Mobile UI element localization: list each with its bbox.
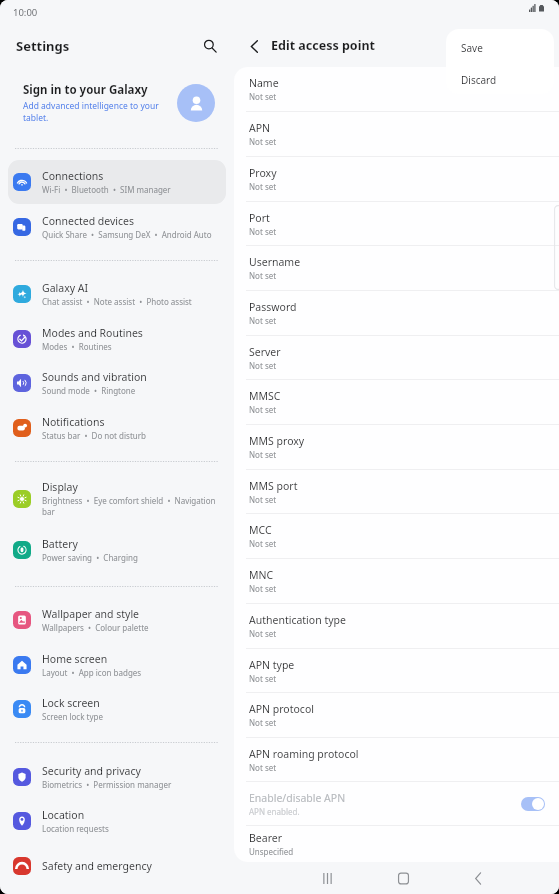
button[interactable]: APN roaming protocol [234, 738, 559, 782]
button[interactable]: Back [461, 863, 495, 893]
staticText: Authentication type [249, 613, 346, 627]
button[interactable]: MCC [234, 514, 559, 559]
staticText: Edit access point [271, 37, 375, 54]
staticText: Not set [249, 762, 277, 773]
staticText: Sounds and vibration [42, 370, 147, 384]
button[interactable]: Wallpaper and style [8, 598, 226, 642]
button[interactable]: Password [234, 291, 559, 336]
staticText: 10:00 [13, 6, 38, 19]
button[interactable]: Port [234, 202, 559, 246]
staticText: Not set [249, 226, 277, 237]
staticText: Discard [461, 73, 497, 87]
staticText: Not set [249, 538, 277, 549]
button[interactable]: Save [446, 29, 554, 66]
staticText: Bearer [249, 831, 283, 845]
button[interactable]: Name [234, 67, 559, 112]
button[interactable]: MNC [234, 559, 559, 604]
staticText: MMSC [249, 389, 281, 403]
button[interactable]: Notifications [8, 405, 226, 450]
button[interactable]: Username [234, 246, 559, 291]
button[interactable]: Security and privacy [8, 754, 226, 799]
button[interactable]: Enable/disable APN [234, 782, 559, 826]
staticText: APN roaming protocol [249, 747, 359, 761]
staticText: Modes • Routines [42, 341, 112, 352]
button[interactable]: Home [386, 863, 420, 893]
button[interactable]: Authentication type [234, 604, 559, 649]
button[interactable]: Connections [8, 160, 226, 204]
staticText: Not set [249, 673, 277, 684]
staticText: APN enabled. [249, 806, 300, 817]
staticText: Location requests [42, 823, 109, 834]
button[interactable]: Back [243, 35, 265, 57]
staticText: MMS port [249, 479, 298, 493]
button[interactable]: MMSC [234, 380, 559, 425]
staticText: Status bar • Do not disturb [42, 430, 146, 441]
staticText: Not set [249, 360, 277, 371]
staticText: Location [42, 808, 85, 822]
button[interactable]: Recent apps [310, 863, 344, 893]
staticText: APN protocol [249, 702, 314, 716]
staticText: Server [249, 345, 281, 359]
staticText: Password [249, 300, 297, 314]
button[interactable]: Display [8, 473, 226, 524]
staticText: Not set [249, 628, 277, 639]
staticText: Not set [249, 136, 277, 147]
staticText: Sound mode • Ringtone [42, 385, 136, 396]
button[interactable]: MMS port [234, 470, 559, 514]
staticText: Display [42, 480, 78, 494]
staticText: Chat assist • Note assist • Photo assist [42, 296, 192, 307]
staticText: Quick Share • Samsung DeX • Android Auto [42, 229, 212, 240]
button[interactable]: MMS proxy [234, 425, 559, 470]
staticText: Lock screen [42, 696, 100, 710]
staticText: Name [249, 76, 279, 90]
staticText: Security and privacy [42, 764, 141, 778]
button[interactable]: APN type [234, 649, 559, 693]
staticText: Not set [249, 449, 277, 460]
button[interactable]: Battery [8, 524, 226, 575]
button[interactable]: Galaxy AI [8, 272, 226, 316]
staticText: Add advanced intelligence to your tablet… [23, 100, 167, 124]
staticText: Username [249, 255, 301, 269]
staticText: Proxy [249, 166, 277, 180]
staticText: Enable/disable APN [249, 791, 346, 805]
staticText: Settings [16, 37, 70, 55]
staticText: Wi-Fi • Bluetooth • SIM manager [42, 184, 171, 195]
button[interactable]: APN [234, 112, 559, 157]
button[interactable]: Location [8, 799, 226, 843]
button[interactable]: Sign in to your Galaxy [23, 68, 215, 137]
button[interactable]: Proxy [234, 157, 559, 202]
button[interactable]: Connected devices [8, 204, 226, 249]
staticText: Home screen [42, 652, 108, 666]
button[interactable]: Search [197, 33, 223, 59]
staticText: Not set [249, 270, 277, 281]
staticText: Not set [249, 181, 277, 192]
staticText: Screen lock type [42, 711, 103, 722]
staticText: Power saving • Charging [42, 552, 138, 563]
staticText: Save [461, 41, 483, 55]
button[interactable]: Server [234, 336, 559, 380]
staticText: Connected devices [42, 214, 135, 228]
staticText: Wallpaper and style [42, 607, 140, 621]
button[interactable]: APN protocol [234, 693, 559, 738]
staticText: Port [249, 211, 270, 225]
button[interactable]: Discard [446, 66, 554, 94]
staticText: Notifications [42, 415, 105, 429]
button[interactable]: Sounds and vibration [8, 361, 226, 405]
button[interactable]: Lock screen [8, 687, 226, 731]
staticText: Biometrics • Permission manager [42, 779, 172, 790]
staticText: Safety and emergency [42, 859, 152, 873]
staticText: Not set [249, 717, 277, 728]
staticText: Not set [249, 494, 277, 505]
button[interactable]: Modes and Routines [8, 316, 226, 361]
staticText: Not set [249, 583, 277, 594]
staticText: Galaxy AI [42, 281, 89, 295]
staticText: MMS proxy [249, 434, 305, 448]
staticText: Unspecified [249, 846, 294, 857]
staticText: Connections [42, 169, 104, 183]
button[interactable]: Bearer [234, 826, 559, 862]
button[interactable]: Safety and emergency [8, 843, 226, 888]
staticText: Sign in to your Galaxy [23, 82, 148, 98]
button[interactable]: Home screen [8, 642, 226, 687]
staticText: Not set [249, 315, 277, 326]
staticText: Not set [249, 404, 277, 415]
